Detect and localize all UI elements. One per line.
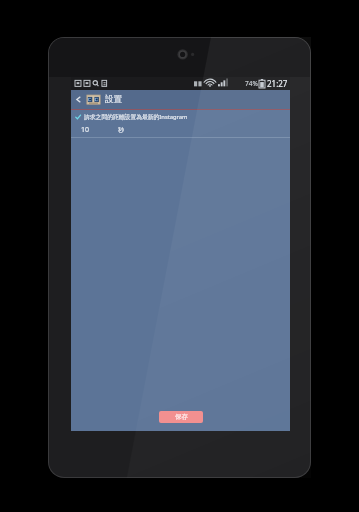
staticText: 21:27 [267, 78, 288, 89]
staticText: 請求之間的距離設置為最新的Instagram [84, 113, 188, 121]
button[interactable]: 請求之間的距離設置為最新的Instagram [71, 110, 290, 123]
staticText: 秒 [118, 126, 124, 134]
staticText: 10 [81, 125, 90, 135]
staticText: 保存 [175, 413, 188, 421]
button[interactable]: 保存 [159, 411, 203, 423]
button[interactable]: Back [71, 90, 86, 109]
staticText: 74% [245, 79, 258, 88]
staticText: 設置 [105, 94, 122, 105]
button[interactable]: 10 [71, 123, 290, 137]
button[interactable]: App icon [86, 93, 101, 106]
